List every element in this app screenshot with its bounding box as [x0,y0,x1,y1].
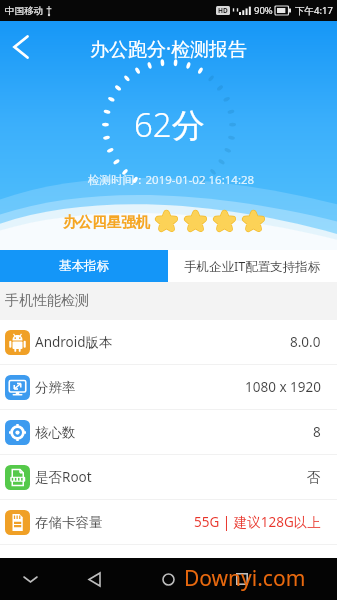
button[interactable]: 是否Root [0,455,337,499]
staticText: 核心数 [35,424,76,441]
staticText: Android版本 [35,333,113,351]
staticText: 分辨率 [35,379,76,396]
staticText: 存储卡容量 [35,514,103,531]
button[interactable]: 基本指标 [0,250,168,282]
button[interactable]: 核心数 [0,410,337,454]
button[interactable]: Hide keyboard [10,559,50,599]
staticText: 8.0.0 [290,333,321,351]
staticText: 否 [307,469,321,486]
staticText: 1080 x 1920 [245,378,321,396]
button[interactable]: Back [74,559,114,599]
button[interactable]: Recents [222,559,262,599]
staticText: 90% [254,4,273,17]
button[interactable]: 手机企业IT配置支持指标 [168,250,337,282]
button[interactable]: Home [148,559,188,599]
staticText: 办公四星强机 [63,213,150,231]
staticText: 62分 [134,102,205,147]
staticText: 手机企业IT配置支持指标 [184,258,321,275]
staticText: 55G | 建议128G以上 [194,513,321,531]
staticText: 中国移动 [5,5,43,17]
staticText: 办公跑分·检测报告 [90,36,248,62]
staticText: 8 [313,423,321,441]
staticText: 检测时间：2019-01-02 16:14:28 [88,172,255,188]
button[interactable]: Android版本 [0,320,337,364]
staticText: 下午4:17 [295,4,333,17]
staticText: Downyi.com [184,564,306,593]
button[interactable]: 分辨率 [0,365,337,409]
staticText: HD [218,6,228,15]
staticText: 是否Root [35,468,92,486]
button[interactable]: Back [5,31,37,63]
staticText: 手机性能检测 [5,292,89,310]
staticText: 基本指标 [59,258,109,274]
button[interactable]: 存储卡容量 [0,500,337,544]
